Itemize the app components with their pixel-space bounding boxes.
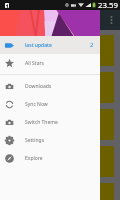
staticText: Settings bbox=[25, 137, 45, 144]
staticText: last update bbox=[25, 42, 52, 49]
button[interactable]: Settings bbox=[0, 131, 100, 149]
button[interactable]: Sync Now bbox=[0, 95, 100, 113]
staticText: Switch Theme bbox=[25, 119, 58, 126]
staticText: Downloads bbox=[25, 83, 52, 90]
staticText: All Stars bbox=[25, 60, 44, 67]
button[interactable]: last update bbox=[0, 36, 100, 54]
button[interactable]: All Stars bbox=[0, 54, 100, 72]
staticText: Sync Now bbox=[25, 101, 48, 108]
staticText: Explore bbox=[25, 155, 43, 162]
staticText: 23.59 bbox=[98, 0, 118, 10]
button[interactable]: Downloads bbox=[0, 77, 100, 95]
button[interactable]: Explore bbox=[0, 149, 100, 167]
staticText: 2 bbox=[90, 41, 94, 49]
button[interactable]: Switch Theme bbox=[0, 113, 100, 131]
